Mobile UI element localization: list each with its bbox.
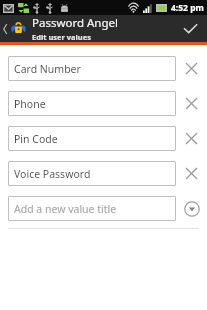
- button[interactable]: Delete Voice Password: [182, 164, 201, 183]
- staticText: Pin Code: [14, 132, 58, 146]
- button[interactable]: Phone: [8, 91, 176, 116]
- button[interactable]: Phone: [0, 86, 207, 121]
- staticText: Password Angel: [32, 15, 118, 31]
- button[interactable]: Voice Password: [0, 156, 207, 191]
- staticText: Edit user values: [32, 32, 91, 42]
- staticText: Phone: [14, 97, 46, 111]
- staticText: Voice Password: [14, 167, 91, 181]
- button[interactable]: Add a new value title: [8, 196, 176, 221]
- button[interactable]: Navigate up: [0, 19, 29, 38]
- button[interactable]: Voice Password: [8, 161, 176, 186]
- button[interactable]: Add a new value title: [0, 191, 207, 226]
- staticText: 4:52 pm: [171, 2, 204, 14]
- button[interactable]: Card Number: [8, 56, 176, 81]
- button[interactable]: Delete Card Number: [182, 59, 201, 78]
- button[interactable]: Delete Pin Code: [182, 129, 201, 148]
- button[interactable]: Choose value type: [182, 199, 201, 218]
- staticText: Card Number: [14, 62, 81, 76]
- button[interactable]: Pin Code: [8, 126, 176, 151]
- button[interactable]: Pin Code: [0, 121, 207, 156]
- button[interactable]: Card Number: [0, 51, 207, 86]
- staticText: Add a new value title: [14, 202, 117, 216]
- button[interactable]: Delete Phone: [182, 94, 201, 113]
- button[interactable]: Save: [174, 20, 207, 38]
